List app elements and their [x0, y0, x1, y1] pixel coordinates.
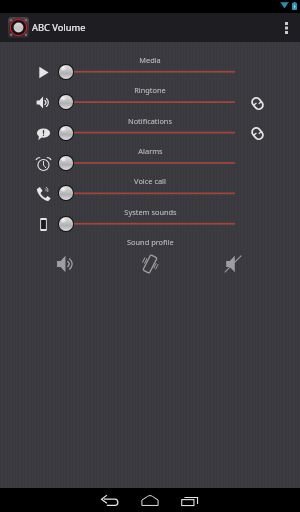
staticText: Voice call	[134, 176, 166, 186]
button[interactable]: Link volumes	[246, 92, 268, 114]
staticText: ABC Volume	[32, 21, 86, 34]
button[interactable]: Recent apps	[172, 488, 208, 512]
button[interactable]: Home	[132, 488, 168, 512]
button[interactable]: More options	[273, 13, 300, 42]
button[interactable]: Vibrate mode	[133, 247, 167, 281]
button[interactable]: Voice call	[33, 183, 53, 203]
staticText: Media	[139, 55, 161, 65]
staticText: System sounds	[124, 207, 177, 217]
button[interactable]: Back	[92, 488, 128, 512]
button[interactable]: System sounds	[33, 214, 53, 234]
button[interactable]: Notifications	[33, 123, 53, 143]
staticText: Notifications	[128, 116, 172, 126]
button[interactable]: Alarms	[33, 153, 53, 173]
staticText: Alarms	[138, 146, 163, 156]
button[interactable]: Ringtone	[33, 92, 53, 112]
button[interactable]: Silent mode	[216, 247, 250, 281]
staticText: Ringtone	[134, 85, 166, 95]
staticText: Sound profile	[127, 237, 174, 247]
button[interactable]: Link volumes	[246, 122, 268, 144]
button[interactable]: Sound mode	[49, 247, 83, 281]
button[interactable]: Media	[33, 62, 53, 82]
